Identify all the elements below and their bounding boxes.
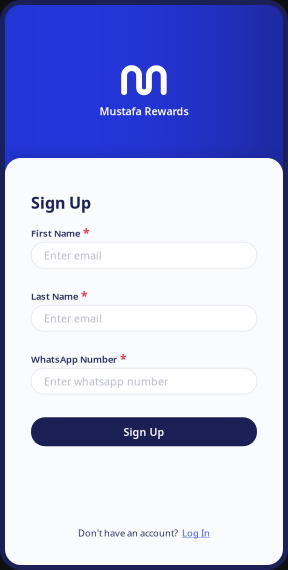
staticText: * bbox=[83, 225, 90, 241]
button[interactable]: Enter whatsapp number bbox=[31, 368, 257, 394]
staticText: First Name bbox=[31, 227, 80, 239]
staticText: Enter email bbox=[44, 248, 102, 262]
button[interactable]: Enter email bbox=[31, 305, 257, 331]
staticText: Enter whatsapp number bbox=[44, 374, 168, 388]
button[interactable]: Log In bbox=[182, 527, 210, 539]
staticText: * bbox=[120, 351, 127, 367]
staticText: Last Name bbox=[31, 290, 78, 302]
staticText: * bbox=[81, 288, 88, 304]
staticText: Sign Up bbox=[31, 192, 91, 213]
staticText: Mustafa Rewards bbox=[99, 104, 188, 118]
staticText: WhatsApp Number bbox=[31, 353, 117, 365]
staticText: Enter email bbox=[44, 311, 102, 325]
staticText: Sign Up bbox=[123, 425, 164, 439]
button[interactable]: Enter email bbox=[31, 242, 257, 268]
staticText: Log In bbox=[182, 527, 210, 539]
button[interactable]: Sign Up bbox=[31, 417, 257, 446]
staticText: Don't have an account? bbox=[78, 527, 178, 539]
